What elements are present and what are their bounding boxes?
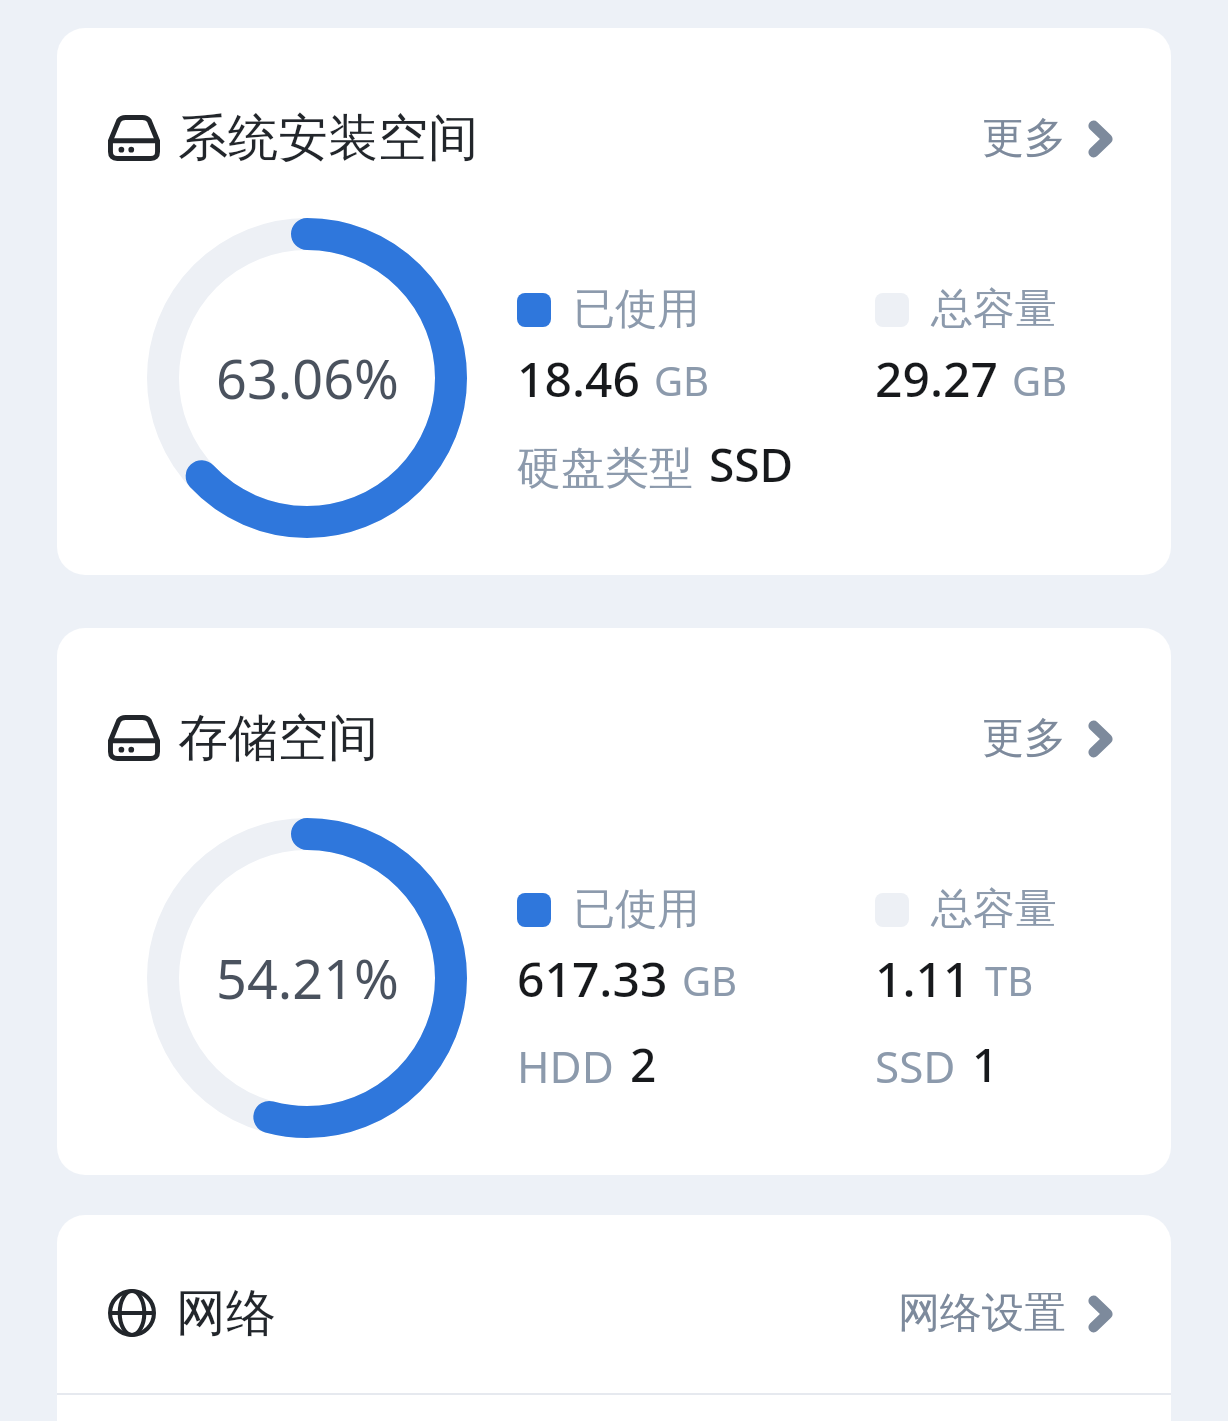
staticText: HDD (517, 1036, 614, 1096)
staticText: GB (1012, 353, 1068, 407)
staticText: 617.33 (517, 946, 668, 1011)
staticText: SSD (875, 1036, 956, 1096)
staticText: 网络设置 (898, 1287, 1066, 1340)
button[interactable]: 更多 (976, 106, 1120, 171)
staticText: 54.21% (216, 941, 399, 1015)
staticText: 网络 (176, 1282, 276, 1345)
button[interactable]: 更多 (976, 706, 1120, 771)
staticText: 1 (972, 1033, 999, 1096)
staticText: GB (682, 953, 738, 1007)
staticText: 已使用 (573, 283, 699, 336)
staticText: 更多 (982, 712, 1066, 765)
staticText: 1.11 (875, 946, 971, 1011)
staticText: 29.27 (875, 346, 998, 411)
staticText: 硬盘类型 (517, 441, 693, 496)
staticText: 更多 (982, 112, 1066, 165)
staticText: TB (985, 953, 1034, 1007)
button[interactable]: 网络设置 (892, 1281, 1120, 1346)
staticText: 系统安装空间 (178, 107, 478, 170)
staticText: GB (654, 353, 710, 407)
staticText: 2 (630, 1033, 657, 1096)
staticText: 存储空间 (178, 707, 378, 770)
staticText: 63.06% (216, 341, 399, 415)
staticText: 总容量 (931, 883, 1057, 936)
staticText: SSD (709, 433, 794, 496)
staticText: 总容量 (931, 283, 1057, 336)
staticText: 已使用 (573, 883, 699, 936)
staticText: 18.46 (517, 346, 640, 411)
